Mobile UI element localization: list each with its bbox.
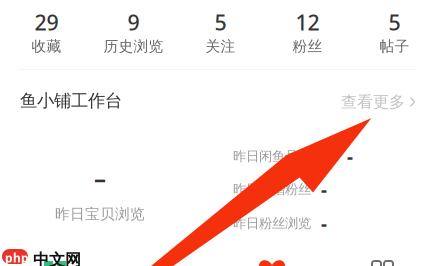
- staticText: 9: [127, 8, 139, 36]
- staticText: 帖子: [379, 37, 409, 55]
- staticText: 粉丝: [292, 37, 322, 55]
- staticText: 5: [214, 8, 226, 36]
- button[interactable]: 我的: [372, 261, 393, 266]
- button[interactable]: 5: [351, 8, 438, 55]
- button[interactable]: 12: [264, 8, 351, 55]
- staticText: 12: [295, 8, 319, 36]
- button[interactable]: 查看更多: [341, 92, 416, 112]
- staticText: 历史浏览: [103, 37, 163, 55]
- staticText: 昨日闲鱼号浏览量: [233, 148, 337, 165]
- button[interactable]: 29: [3, 8, 90, 55]
- staticText: 5: [388, 8, 400, 36]
- staticText: 关注: [205, 37, 235, 55]
- button[interactable]: 首页: [40, 260, 64, 266]
- staticText: –: [94, 162, 106, 194]
- staticText: 昨日粉丝浏览: [233, 215, 311, 232]
- staticText: -: [321, 177, 327, 202]
- staticText: -: [347, 144, 353, 169]
- staticText: 鱼小铺工作台: [20, 90, 122, 111]
- staticText: 29: [34, 8, 58, 36]
- staticText: 查看更多: [341, 92, 405, 112]
- button[interactable]: 9: [90, 8, 177, 55]
- staticText: 昨日宝贝浏览: [55, 205, 145, 223]
- staticText: 中文网: [33, 250, 81, 266]
- staticText: php: [5, 250, 29, 266]
- staticText: 昨日新增粉丝: [233, 181, 311, 198]
- staticText: 收藏: [31, 37, 61, 55]
- button[interactable]: 收藏: [259, 261, 285, 266]
- staticText: -: [321, 211, 327, 236]
- button[interactable]: 消息: [152, 261, 176, 266]
- button[interactable]: 5: [177, 8, 264, 55]
